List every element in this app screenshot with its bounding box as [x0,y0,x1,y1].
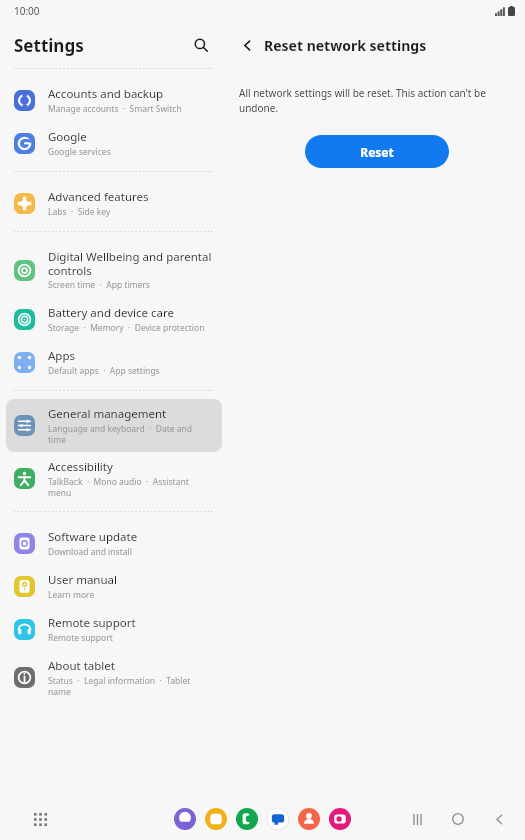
staticText: Learn more [48,589,95,601]
button[interactable]: phone [236,808,258,830]
staticText: Apps [48,348,76,364]
staticText: Reset network settings [264,36,427,55]
button[interactable]: Digital Wellbeing and parental controls [6,242,222,298]
staticText: Settings [14,34,84,57]
staticText: Software update [48,529,138,545]
staticText: About tablet [48,658,115,674]
button[interactable]: Recents [405,807,429,831]
staticText: Remote support [48,615,136,631]
button[interactable]: Accessibility [6,452,222,505]
button[interactable]: files [205,808,227,830]
button[interactable]: Remote support [6,608,222,651]
button[interactable]: Apps [6,341,222,384]
button[interactable]: User manual [6,565,222,608]
staticText: Accessibility [48,459,113,475]
staticText: Accounts and backup [48,86,164,102]
staticText: Manage accounts · Smart Switch [48,103,182,115]
staticText: User manual [48,572,117,588]
staticText: Google [48,129,87,145]
button[interactable]: Apps [28,807,52,831]
staticText: All network settings will be reset. This… [239,86,514,115]
staticText: Screen time · App timers [48,279,150,291]
staticText: Storage · Memory · Device protection [48,322,205,334]
button[interactable]: Back [234,32,260,58]
staticText: Default apps · App settings [48,365,160,377]
button[interactable]: Software update [6,522,222,565]
button[interactable]: Google [6,122,222,165]
staticText: Status · Legal information · Tablet name [48,675,212,697]
staticText: Advanced features [48,189,149,205]
staticText: 10:00 [14,4,40,18]
staticText: General management [48,406,167,422]
button[interactable]: internet [174,808,196,830]
staticText: Reset [360,144,394,160]
button[interactable]: messages [267,808,289,830]
staticText: Language and keyboard · Date and time [48,423,212,445]
button[interactable]: Accounts and backup [6,79,222,122]
button[interactable]: Battery and device care [6,298,222,341]
staticText: Google services [48,146,111,158]
button[interactable]: Home [446,807,470,831]
staticText: Labs · Side key [48,206,111,218]
button[interactable]: General management [6,399,222,452]
staticText: Battery and device care [48,305,175,321]
staticText: Remote support [48,632,113,644]
staticText: TalkBack · Mono audio · Assistant menu [48,476,212,498]
button[interactable]: Advanced features [6,182,222,225]
button[interactable]: Reset [305,135,449,168]
staticText: Download and install [48,546,132,558]
button[interactable]: contacts [298,808,320,830]
button[interactable]: About tablet [6,651,222,704]
staticText: Digital Wellbeing and parental controls [48,249,212,278]
button[interactable]: Back [487,807,511,831]
button[interactable]: camera [329,808,351,830]
button[interactable]: Search [188,32,214,58]
